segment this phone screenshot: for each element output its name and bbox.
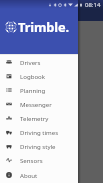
staticText: Telemetry — [20, 114, 49, 122]
button[interactable]: Sensors — [0, 153, 78, 167]
button[interactable]: Driving times — [0, 125, 78, 139]
staticText: Planning — [20, 86, 46, 94]
button[interactable]: Drivers — [0, 55, 78, 69]
button[interactable]: Messenger — [0, 97, 78, 111]
staticText: Logbook — [20, 72, 46, 80]
button[interactable]: Telemetry — [0, 111, 78, 125]
staticText: Trimble. — [18, 18, 70, 35]
staticText: Messenger — [20, 100, 52, 108]
button[interactable]: Driving style — [0, 139, 78, 153]
button[interactable]: Planning — [0, 83, 78, 97]
staticText: Driving times — [20, 128, 59, 136]
button[interactable]: Logbook — [0, 69, 78, 83]
staticText: Sensors — [20, 156, 43, 164]
staticText: Driving style — [20, 142, 56, 150]
staticText: Drivers — [20, 58, 41, 66]
staticText: 08:14 — [85, 1, 101, 9]
staticText: About — [20, 171, 38, 179]
button[interactable]: About — [0, 168, 78, 182]
